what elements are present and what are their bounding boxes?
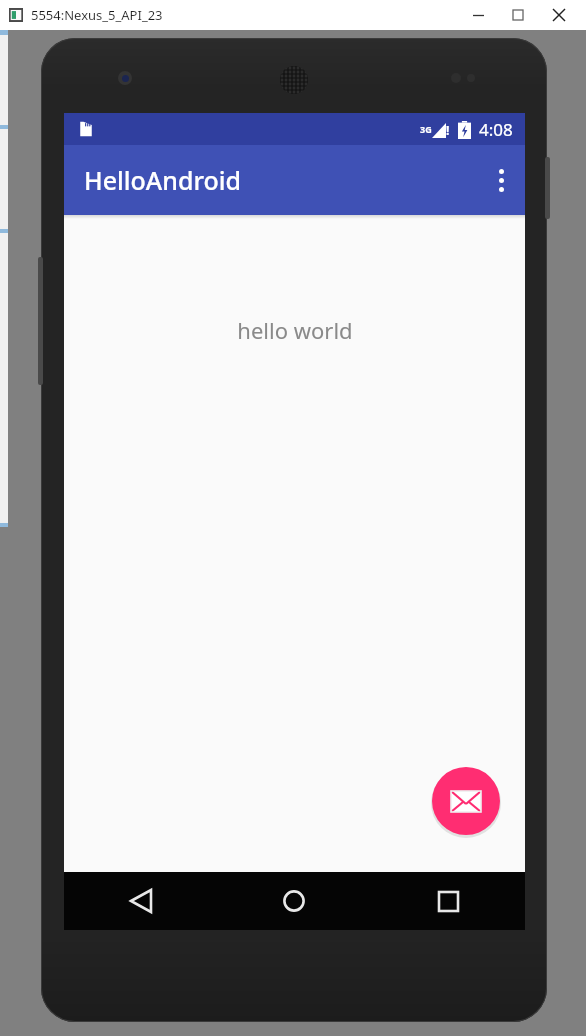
staticText: hello world — [237, 315, 353, 345]
button[interactable]: Send email — [432, 767, 500, 835]
button[interactable]: More options — [477, 156, 525, 204]
staticText: 4:08 — [479, 118, 513, 141]
staticText: 5554:Nexus_5_API_23 — [31, 6, 163, 24]
staticText: 3G — [420, 123, 432, 135]
button[interactable]: Power — [545, 157, 550, 219]
staticText: HelloAndroid — [84, 163, 241, 197]
button[interactable]: Home — [217, 872, 371, 930]
button[interactable]: Maximize — [498, 1, 538, 29]
button[interactable]: Close — [538, 1, 580, 29]
button[interactable]: Back — [64, 872, 217, 930]
button[interactable]: Minimize — [458, 1, 498, 29]
button[interactable]: Recent apps — [371, 872, 525, 930]
staticText: ! — [446, 122, 450, 138]
